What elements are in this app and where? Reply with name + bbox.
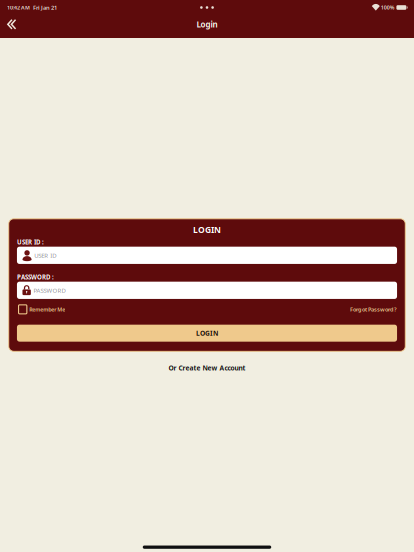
staticText: Forgot Password?: [350, 305, 397, 313]
staticText: USER ID :: [17, 238, 44, 246]
staticText: 100%: [380, 4, 395, 11]
staticText: PASSWORD: [33, 286, 65, 294]
staticText: LOGIN: [196, 329, 218, 338]
staticText: PASSWORD :: [17, 273, 54, 281]
staticText: LOGIN: [193, 224, 221, 236]
button[interactable]: Back: [0, 15, 30, 38]
staticText: 10:42 AM: [7, 4, 30, 11]
staticText: USER ID: [34, 251, 56, 259]
staticText: Login: [196, 19, 217, 30]
button[interactable]: Forgot Password?: [350, 305, 397, 314]
button[interactable]: Remember Me: [17, 305, 65, 314]
button[interactable]: LOGIN: [17, 325, 397, 342]
staticText: Fri Jan 21: [30, 4, 57, 11]
staticText: Remember Me: [29, 306, 65, 313]
staticText: Or Create New Account: [168, 363, 245, 372]
